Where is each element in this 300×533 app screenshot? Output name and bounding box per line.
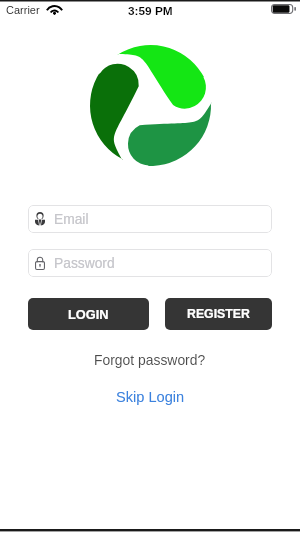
button[interactable]: LOGIN (28, 298, 149, 330)
staticText: REGISTER (187, 307, 250, 321)
staticText: Email (54, 212, 89, 227)
staticText: Forgot password? (94, 352, 206, 368)
button[interactable]: Skip Login (0, 387, 300, 407)
staticText: Password (54, 256, 115, 271)
button[interactable]: Password (28, 249, 272, 277)
button[interactable]: Forgot password? (0, 350, 300, 370)
button[interactable]: REGISTER (165, 298, 272, 330)
staticText: 3:59 PM (128, 4, 173, 17)
staticText: Skip Login (116, 389, 185, 405)
staticText: LOGIN (68, 307, 109, 321)
button[interactable]: Email (28, 205, 272, 233)
staticText: Carrier (6, 4, 40, 16)
